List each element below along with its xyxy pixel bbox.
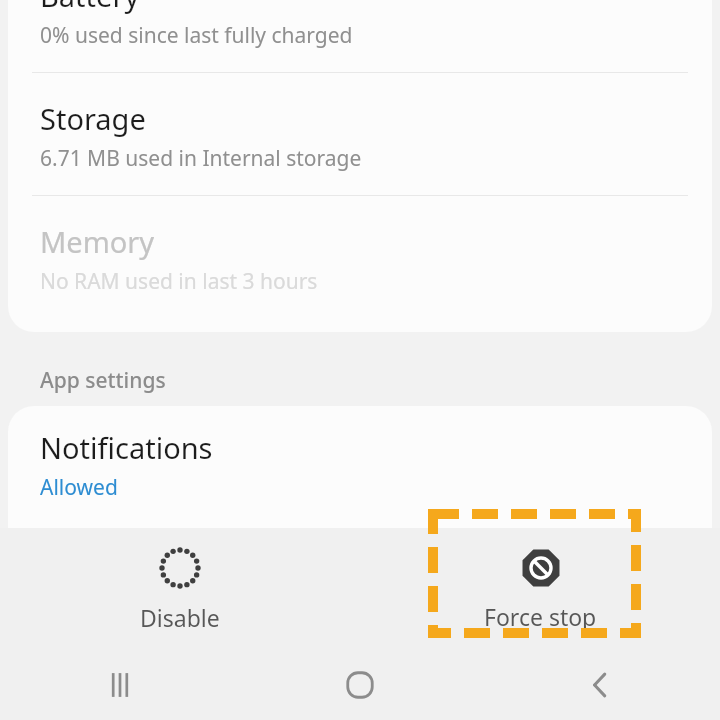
button[interactable]: Storage [8,99,712,173]
button[interactable]: Disable [0,528,360,650]
staticText: Storage [40,99,146,138]
staticText: 6.71 MB used in Internal storage [40,144,362,173]
button[interactable]: Recent apps [0,650,240,720]
button[interactable]: Memory [8,222,712,296]
button[interactable]: Battery [8,0,712,50]
staticText: App settings [40,366,166,395]
staticText: Notifications [40,428,213,467]
staticText: Allowed [40,473,118,502]
staticText: Disable [140,602,220,633]
staticText: Force stop [484,601,597,632]
button[interactable]: Back [480,650,720,720]
staticText: 0% used since last fully charged [40,21,353,50]
button[interactable]: Notifications [8,406,712,502]
staticText: Battery [40,0,140,15]
button[interactable]: Home [240,650,480,720]
button[interactable]: Force stop [360,528,720,650]
staticText: No RAM used in last 3 hours [40,267,318,296]
staticText: Memory [40,222,155,261]
